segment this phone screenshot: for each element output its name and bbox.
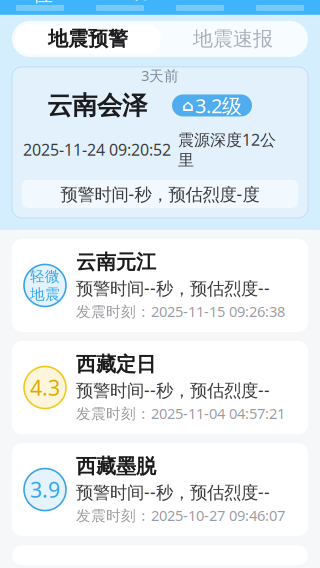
button[interactable]: 4.3 xyxy=(12,341,308,434)
button[interactable]: 3天前 xyxy=(12,67,308,218)
staticText: 云南会泽 xyxy=(47,90,147,121)
staticText: 未获取定位 xyxy=(33,0,113,6)
button[interactable]: 未获取定位 xyxy=(12,0,113,6)
staticText: 3.9 xyxy=(30,475,60,504)
staticText: 3.2级 xyxy=(195,92,242,119)
staticText: 云南元江 xyxy=(76,250,156,274)
staticText: 在线反馈 xyxy=(130,0,181,3)
staticText: 预警时间-秒，预估烈度-度 xyxy=(60,182,259,205)
button[interactable]: 3.9 xyxy=(12,443,308,536)
staticText: 发震时刻：2025-11-04 04:57:21 xyxy=(76,404,285,423)
button[interactable]: 轻微 xyxy=(12,239,308,332)
staticText: 轻微 xyxy=(30,267,60,285)
staticText: 预警时间--秒，预估烈度-- xyxy=(76,378,270,401)
staticText: 西藏墨脱 xyxy=(76,454,156,479)
staticText: 预警时间--秒，预估烈度-- xyxy=(76,276,270,299)
staticText: ⌂ xyxy=(182,96,193,115)
staticText: 2025-11-24 09:20:52 xyxy=(23,139,171,160)
staticText: 地震 xyxy=(30,285,60,303)
staticText: 发震时刻：2025-10-27 09:46:07 xyxy=(76,506,285,525)
button[interactable]: 地震速报 xyxy=(161,24,305,54)
staticText: 4.3 xyxy=(30,373,60,402)
staticText: 西藏定日 xyxy=(76,352,156,377)
staticText: 发震时刻：2025-11-15 09:26:38 xyxy=(76,301,285,321)
staticText: 预警时间--秒，预估烈度-- xyxy=(76,481,270,504)
staticText: 3天前 xyxy=(141,66,179,85)
button[interactable]: 地震预警 xyxy=(15,24,161,54)
staticText: 震源深度12公里 xyxy=(178,129,276,170)
staticText: 地震速报 xyxy=(193,27,273,51)
staticText: 地震预警 xyxy=(48,27,128,51)
